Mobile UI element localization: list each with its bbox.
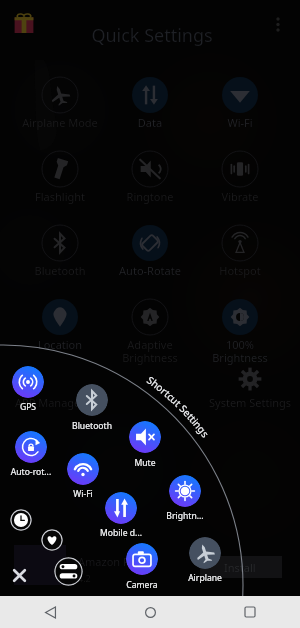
button[interactable]: Rewards [12,11,36,35]
button[interactable]: Auto-rot... [15,431,47,463]
staticText: 4.2 [78,572,91,584]
button[interactable]: Wi-Fi [195,70,285,136]
button[interactable]: Bluetooth [76,384,108,416]
button[interactable]: Flashlight [15,144,105,210]
staticText: Auto-Rotate [105,263,195,278]
staticText: Amazon Prime [78,554,154,569]
button[interactable]: Bluetooth [15,218,105,284]
button[interactable]: Mobile d... [105,492,137,524]
staticText: Flashlight [15,189,105,204]
button[interactable]: Clock [10,509,32,531]
staticText: Airplane [160,572,250,584]
staticText: Data [105,115,195,130]
button[interactable]: Vibrate [195,144,285,210]
button[interactable]: Ringtone [105,144,195,210]
staticText: Location [15,337,105,352]
staticText: Airplane Mode [15,115,105,130]
staticText: Brightn... [140,510,230,522]
button[interactable]: Hotspot [195,218,285,284]
staticText: Wi-Fi [195,115,285,130]
staticText: Camera [97,579,187,591]
staticText: Bluetooth [15,263,105,278]
staticText: Mobile d... [76,527,166,539]
staticText: GPS [0,401,73,413]
staticText: Quick Settings [2,23,300,48]
staticText: Mute [100,457,190,469]
button[interactable]: Brightn... [169,475,201,507]
button[interactable]: Airplane [189,537,221,569]
button[interactable]: Adaptive Brightness [105,292,195,358]
staticText: Vibrate [195,189,285,204]
button[interactable]: GPS [12,366,44,398]
button[interactable]: Recents [232,596,268,628]
button[interactable]: More options [266,12,290,36]
staticText: Bluetooth [47,420,137,432]
staticText: 100% Brightness [195,337,285,365]
staticText: Auto-rot... [0,466,76,478]
staticText: Adaptive Brightness [105,337,195,365]
button[interactable]: Camera [126,543,158,575]
button[interactable]: Location [15,292,105,358]
staticText: APP Manager [15,395,85,410]
button[interactable]: Mute [129,421,161,453]
staticText: Install [224,560,256,575]
button[interactable]: Auto-Rotate [105,218,195,284]
button[interactable]: Data [105,70,195,136]
button[interactable]: Home [132,596,168,628]
button[interactable]: Favourites [41,529,63,551]
staticText: Ringtone [105,189,195,204]
button[interactable]: Airplane Mode [15,70,105,136]
button[interactable]: Wi-Fi [67,453,99,485]
button[interactable]: Toggles [54,557,83,586]
button[interactable]: 100% Brightness [195,292,285,358]
staticText: Hotspot [195,263,285,278]
button[interactable]: Close [10,566,29,585]
button[interactable]: Back [32,596,68,628]
staticText: System Settings [209,395,292,410]
staticText: Wi-Fi [38,488,128,500]
